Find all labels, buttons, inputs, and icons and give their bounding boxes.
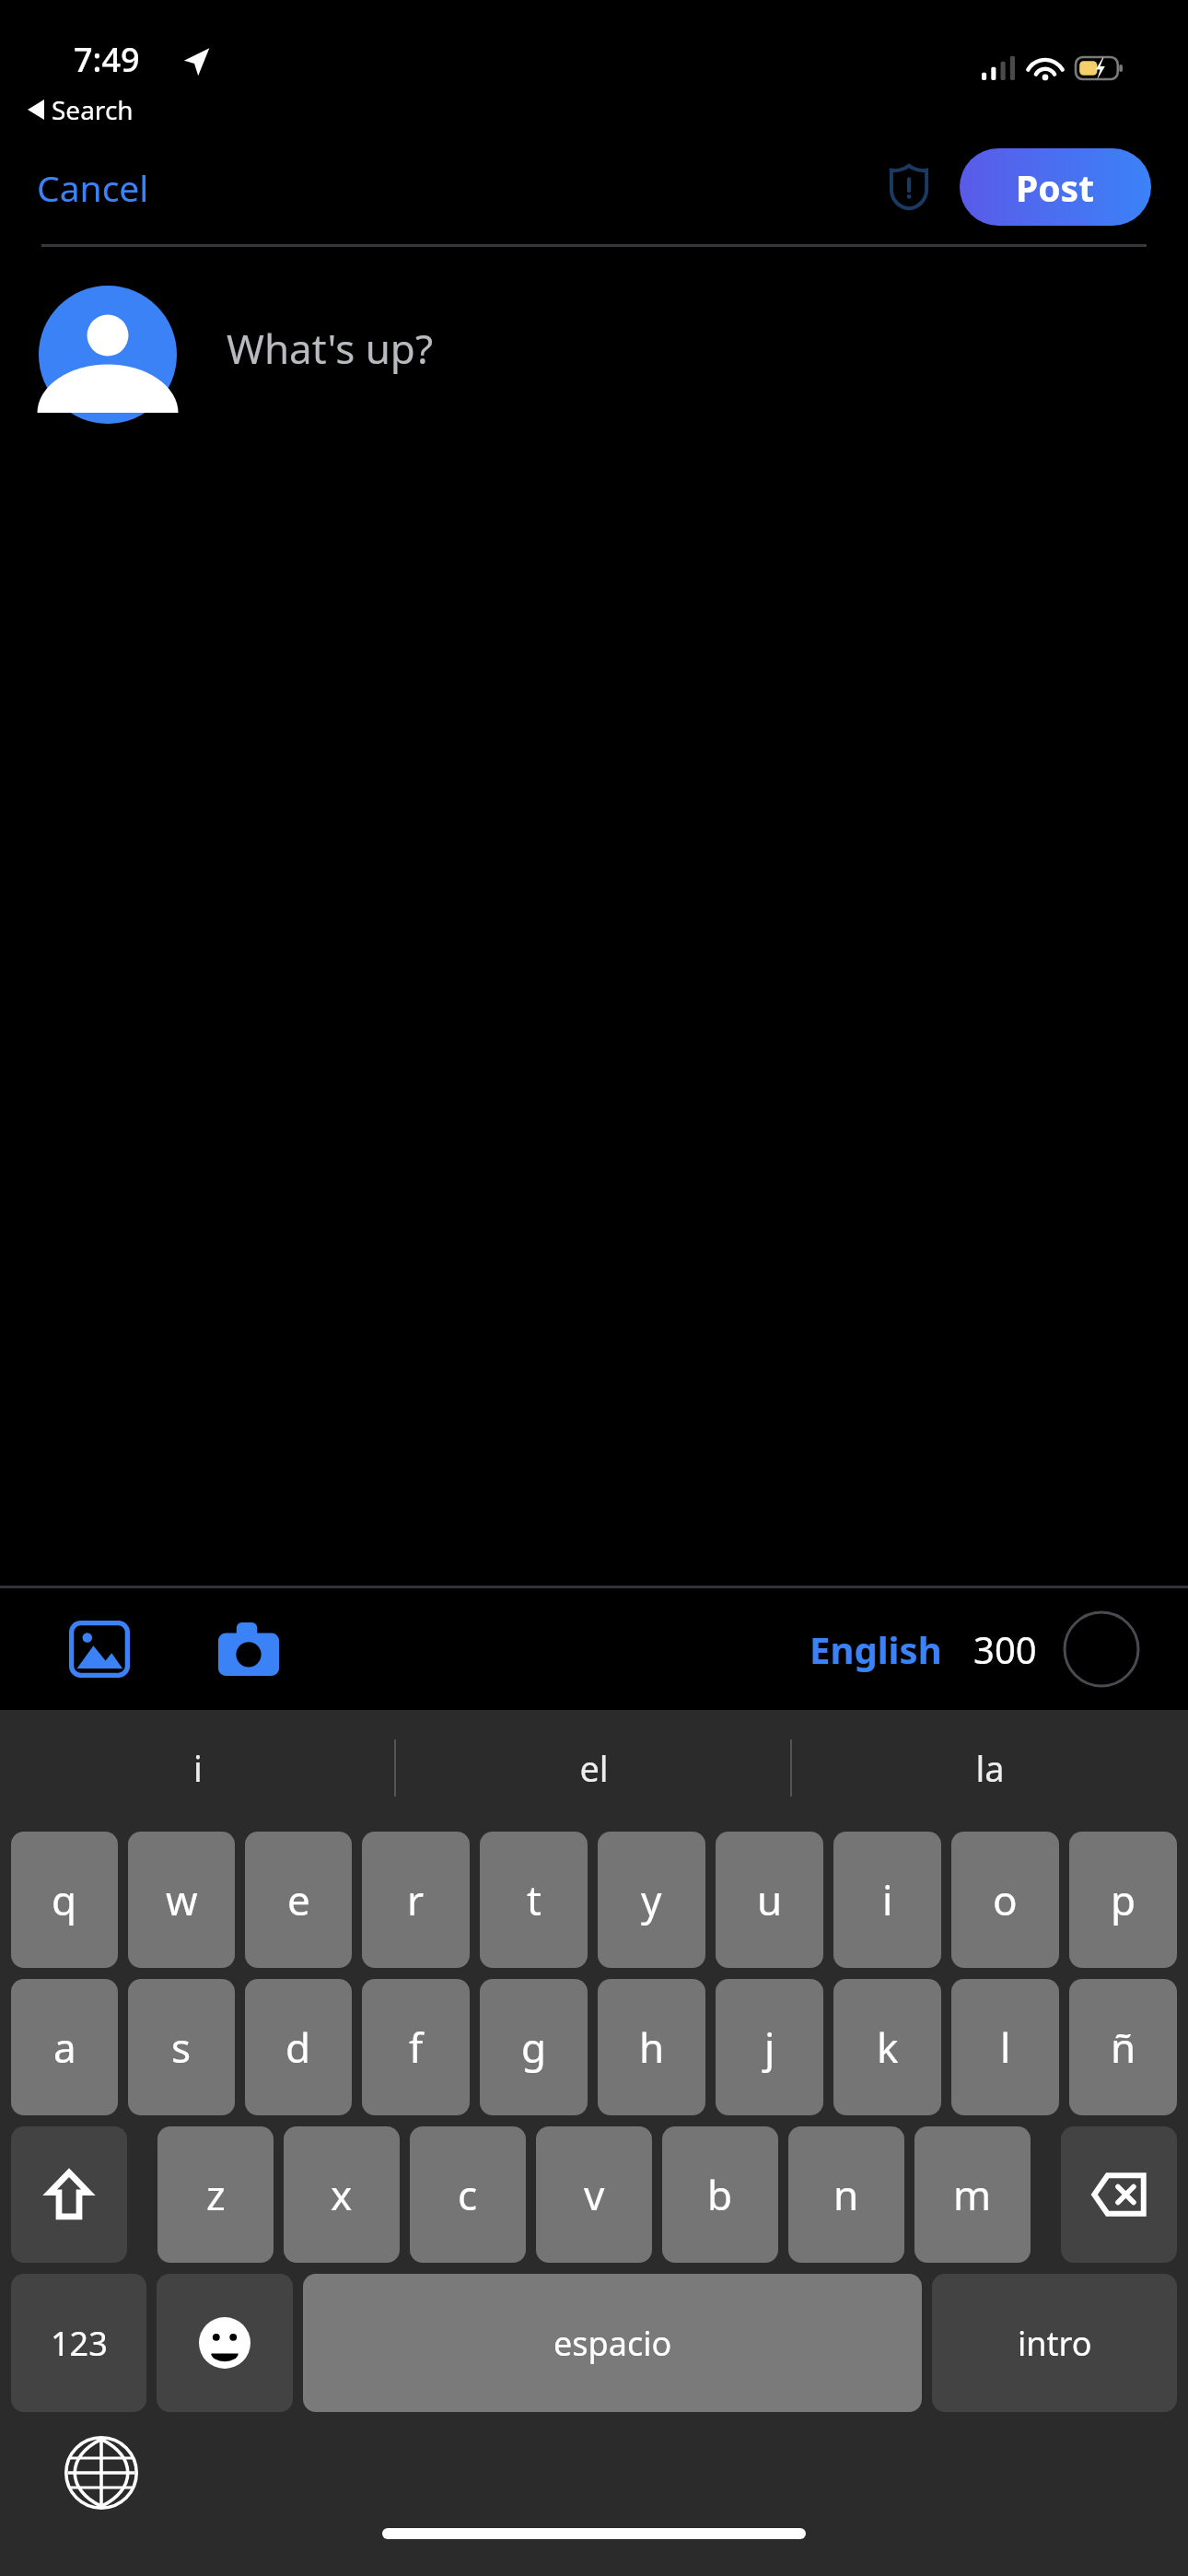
staticText: t (527, 1872, 542, 1927)
button[interactable]: Take photo (212, 1612, 285, 1686)
button[interactable]: l (951, 1979, 1059, 2115)
staticText: g (521, 2020, 547, 2075)
button[interactable]: Post (960, 148, 1151, 226)
staticText: la (975, 1744, 1005, 1792)
button[interactable]: la (792, 1710, 1188, 1826)
staticText: w (166, 1872, 198, 1927)
button[interactable]: intro (932, 2274, 1177, 2412)
staticText: espacio (553, 2321, 672, 2366)
staticText: i (882, 1872, 893, 1927)
staticText: b (707, 2167, 733, 2222)
staticText: x (331, 2167, 353, 2222)
staticText: Post (1016, 163, 1095, 212)
button[interactable]: Content warning (879, 157, 939, 217)
button[interactable]: i (0, 1710, 396, 1826)
button[interactable]: English (806, 1621, 946, 1678)
staticText: j (764, 2020, 775, 2075)
staticText: h (639, 2020, 665, 2075)
staticText: y (641, 1872, 662, 1927)
button[interactable]: i (833, 1832, 941, 1968)
button[interactable]: h (598, 1979, 705, 2115)
staticText: r (407, 1872, 425, 1927)
staticText: Cancel (37, 163, 149, 212)
button[interactable]: w (128, 1832, 235, 1968)
staticText: intro (1018, 2321, 1092, 2366)
staticText: p (1111, 1872, 1136, 1927)
staticText: o (993, 1872, 1018, 1927)
button[interactable]: t (480, 1832, 588, 1968)
staticText: c (458, 2167, 478, 2222)
staticText: s (171, 2020, 192, 2075)
button[interactable]: g (480, 1979, 588, 2115)
button[interactable]: Backspace (1061, 2126, 1177, 2263)
button[interactable]: Cancel (33, 154, 153, 221)
button[interactable]: ñ (1069, 1979, 1177, 2115)
button[interactable]: a (11, 1979, 118, 2115)
staticText: What's up? (227, 321, 434, 376)
button[interactable]: z (157, 2126, 274, 2263)
staticText: k (877, 2020, 899, 2075)
button[interactable]: Add image (63, 1612, 136, 1686)
staticText: u (757, 1872, 783, 1927)
staticText: z (206, 2167, 226, 2222)
button[interactable]: b (662, 2126, 778, 2263)
staticText: Search (52, 92, 134, 127)
button[interactable]: n (788, 2126, 904, 2263)
button[interactable]: Change keyboard language (53, 2425, 149, 2521)
button[interactable]: espacio (303, 2274, 922, 2412)
staticText: 7:49 (74, 37, 140, 82)
staticText: v (584, 2167, 605, 2222)
staticText: ñ (1111, 2020, 1136, 2075)
staticText: d (285, 2020, 311, 2075)
button[interactable]: q (11, 1832, 118, 1968)
button[interactable]: c (410, 2126, 526, 2263)
button[interactable]: f (362, 1979, 470, 2115)
button[interactable]: x (284, 2126, 400, 2263)
button[interactable]: s (128, 1979, 235, 2115)
button[interactable]: j (716, 1979, 823, 2115)
staticText: 300 (973, 1624, 1037, 1674)
button[interactable]: v (536, 2126, 652, 2263)
button[interactable]: y (598, 1832, 705, 1968)
button[interactable]: o (951, 1832, 1059, 1968)
staticText: a (53, 2020, 76, 2075)
staticText: el (579, 1744, 609, 1792)
button[interactable]: u (716, 1832, 823, 1968)
button[interactable]: Emoji (157, 2274, 293, 2412)
staticText: i (193, 1744, 203, 1792)
button[interactable]: el (396, 1710, 792, 1826)
button[interactable]: Shift (11, 2126, 127, 2263)
button[interactable]: r (362, 1832, 470, 1968)
staticText: q (52, 1872, 77, 1927)
staticText: m (953, 2167, 992, 2222)
button[interactable]: e (245, 1832, 352, 1968)
button[interactable]: k (833, 1979, 941, 2115)
button[interactable]: m (914, 2126, 1031, 2263)
staticText: l (1000, 2020, 1011, 2075)
button[interactable]: p (1069, 1832, 1177, 1968)
button[interactable]: d (245, 1979, 352, 2115)
staticText: 123 (51, 2321, 108, 2366)
staticText: e (287, 1872, 310, 1927)
staticText: n (833, 2167, 859, 2222)
button[interactable]: 123 (11, 2274, 146, 2412)
staticText: f (409, 2020, 424, 2075)
button[interactable]: Search (28, 89, 134, 130)
staticText: English (809, 1624, 942, 1674)
